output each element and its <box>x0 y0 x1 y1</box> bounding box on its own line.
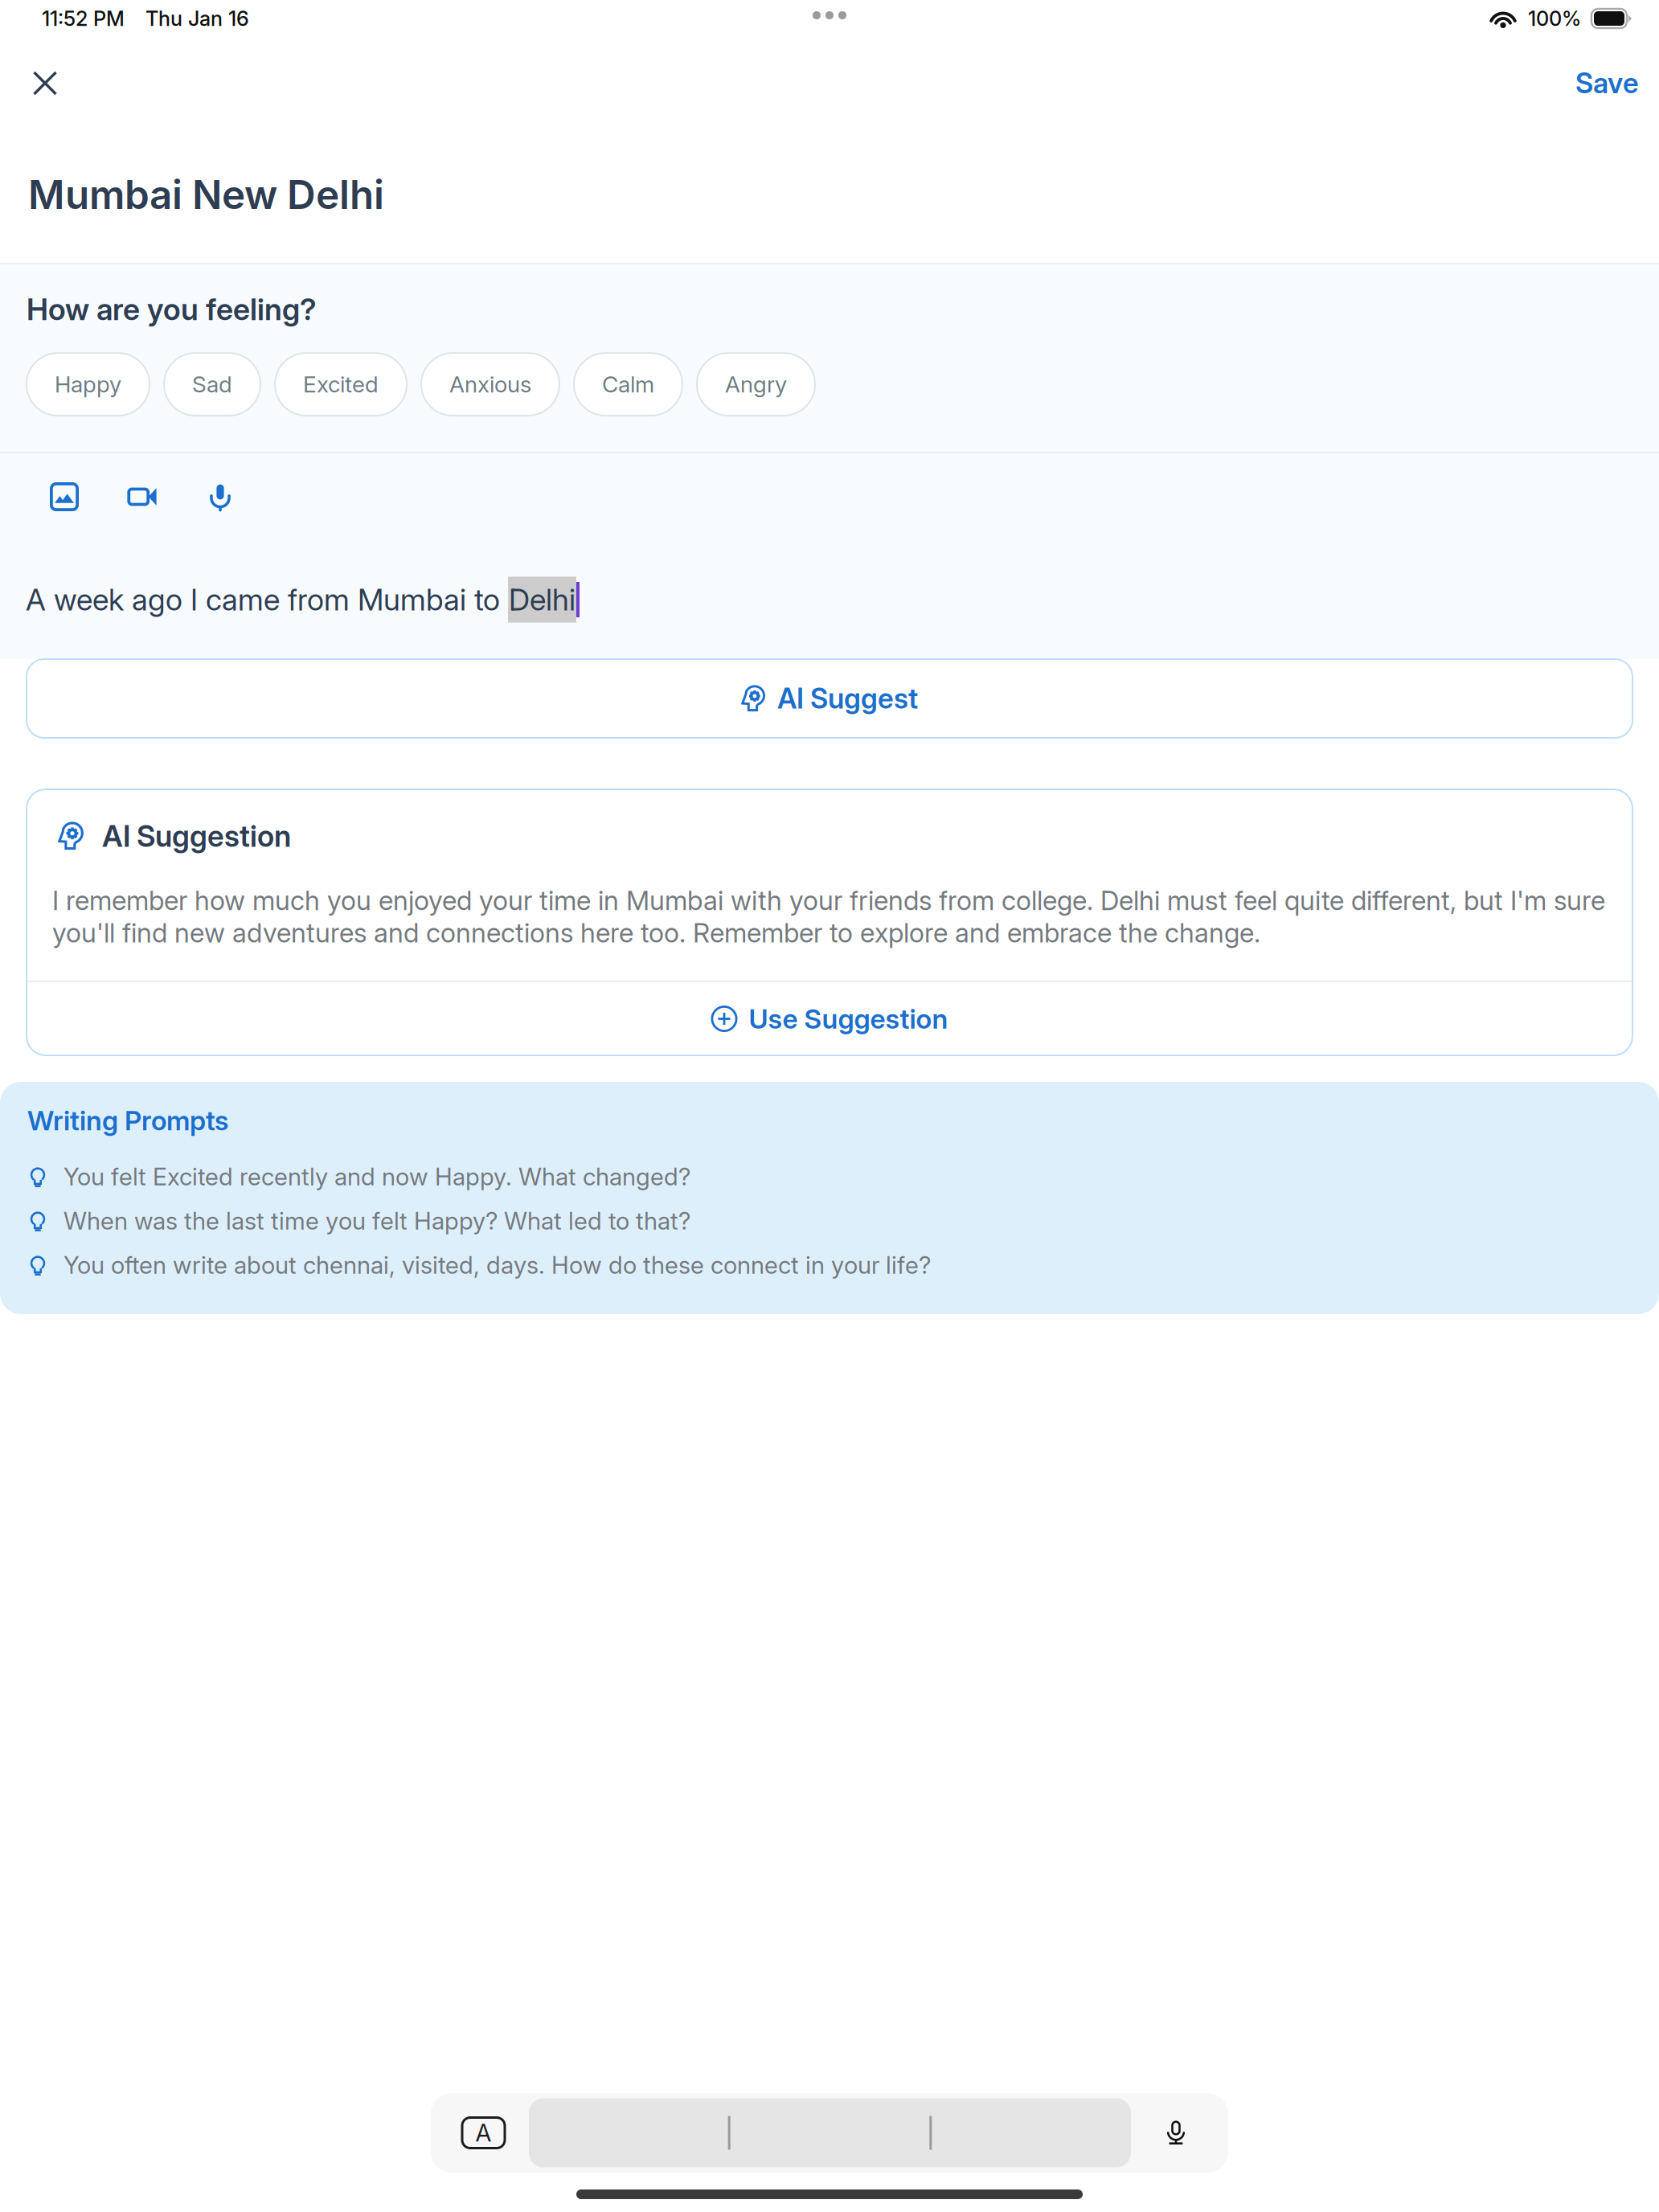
staticText: Anxious <box>449 371 531 398</box>
staticText: Use Suggestion <box>749 1002 948 1035</box>
button[interactable]: AI Suggest <box>27 659 1632 738</box>
button[interactable]: Dictate <box>1164 2116 1188 2150</box>
staticText: Angry <box>725 371 787 398</box>
staticText: 11:52 PM <box>42 6 125 31</box>
staticText: I remember how much you enjoyed your tim… <box>52 884 1605 949</box>
staticText: Delhi <box>509 581 576 618</box>
staticText: When was the last time you felt Happy? W… <box>63 1206 690 1235</box>
button[interactable]: Text formatting <box>462 2118 505 2148</box>
button[interactable]: Excited <box>275 353 407 416</box>
button[interactable]: Angry <box>697 353 815 416</box>
staticText: You often write about chennai, visited, … <box>63 1251 931 1280</box>
button[interactable]: Close <box>23 61 68 106</box>
button[interactable]: Record audio <box>204 481 236 513</box>
button[interactable]: Add photo <box>48 481 80 513</box>
staticText: How are you feeling? <box>27 291 317 327</box>
button[interactable]: Happy <box>27 353 150 416</box>
staticText: 100% <box>1528 6 1581 31</box>
staticText: A week ago I came from Mumbai to <box>26 581 508 618</box>
staticText: Sad <box>192 371 232 398</box>
staticText: Calm <box>602 371 654 398</box>
staticText: AI Suggest <box>777 682 918 715</box>
staticText: A <box>475 2119 492 2147</box>
button[interactable]: When was the last time you felt Happy? W… <box>27 1199 1632 1243</box>
button[interactable]: Add video <box>126 481 158 513</box>
staticText: Happy <box>55 371 121 398</box>
button[interactable]: Sad <box>164 353 260 416</box>
button[interactable]: Use Suggestion <box>27 982 1632 1055</box>
staticText: Mumbai New Delhi <box>28 171 384 219</box>
button[interactable]: You often write about chennai, visited, … <box>27 1243 1632 1287</box>
button[interactable]: Calm <box>574 353 682 416</box>
staticText: Writing Prompts <box>27 1104 228 1137</box>
button[interactable]: Save <box>1575 61 1639 106</box>
staticText: Excited <box>303 371 379 398</box>
staticText: Thu Jan 16 <box>145 6 249 31</box>
staticText: AI Suggestion <box>102 818 291 854</box>
staticText: You felt Excited recently and now Happy.… <box>63 1162 690 1191</box>
button[interactable]: Anxious <box>421 353 559 416</box>
staticText: Save <box>1575 66 1639 100</box>
button[interactable]: You felt Excited recently and now Happy.… <box>27 1154 1632 1199</box>
